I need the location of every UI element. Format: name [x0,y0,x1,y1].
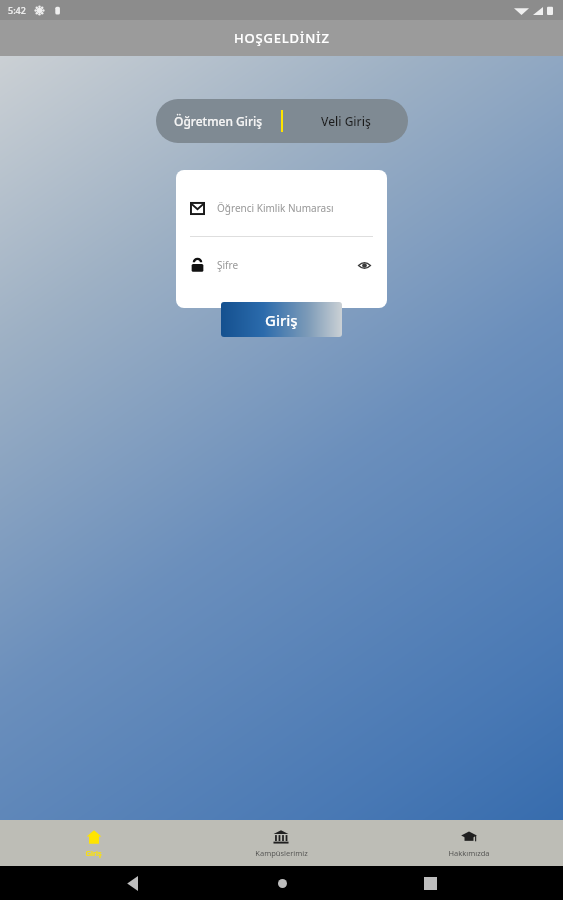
staticText: Hakkımızda [448,848,490,858]
staticText: Öğretmen Giriş [174,113,263,129]
button[interactable]: Home [266,867,298,899]
button[interactable]: Şifre [176,247,387,283]
button[interactable]: Recent apps [414,867,446,899]
button[interactable]: Giriş [0,820,187,866]
staticText: Şifre [217,258,239,272]
staticText: Giriş [265,310,298,330]
button[interactable]: Öğrenci Kimlik Numarası [176,190,387,226]
button[interactable]: Veli Giriş [283,99,408,143]
button[interactable]: Kampüslerimiz [187,820,375,866]
staticText: HOŞGELDİNİZ [234,29,330,47]
button[interactable]: Öğretmen Giriş [156,99,281,143]
staticText: 5:42 [8,4,26,16]
button[interactable]: Şifreyi göster [355,256,373,274]
staticText: Veli Giriş [321,113,371,129]
staticText: Kampüslerimiz [255,848,308,858]
button[interactable]: Back [117,867,149,899]
button[interactable]: Hakkımızda [375,820,563,866]
staticText: Öğrenci Kimlik Numarası [217,201,334,215]
staticText: Giriş [85,848,102,858]
button[interactable]: Giriş [221,302,342,337]
